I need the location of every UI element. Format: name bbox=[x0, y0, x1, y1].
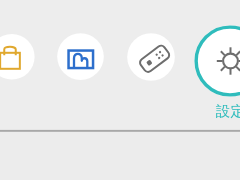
staticText: 設定 bbox=[216, 102, 240, 120]
